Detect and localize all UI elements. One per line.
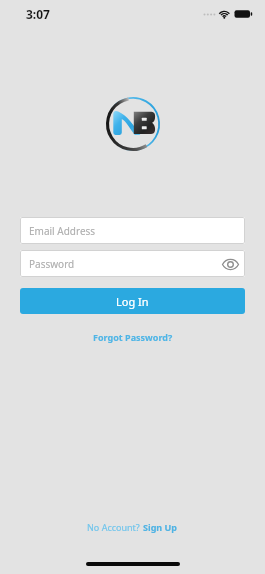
- button[interactable]: Email Address: [20, 217, 245, 244]
- button[interactable]: Show password: [220, 254, 240, 274]
- staticText: No Account?: [87, 521, 143, 533]
- staticText: Email Address: [29, 224, 96, 238]
- staticText: Log In: [116, 294, 149, 309]
- button[interactable]: Password: [20, 250, 245, 277]
- staticText: 3:07: [26, 6, 50, 22]
- staticText: Sign Up: [143, 521, 178, 533]
- staticText: Password: [29, 257, 75, 271]
- button[interactable]: Log In: [20, 288, 245, 314]
- button[interactable]: Forgot Password?: [90, 329, 176, 345]
- button[interactable]: No Account?: [85, 519, 180, 535]
